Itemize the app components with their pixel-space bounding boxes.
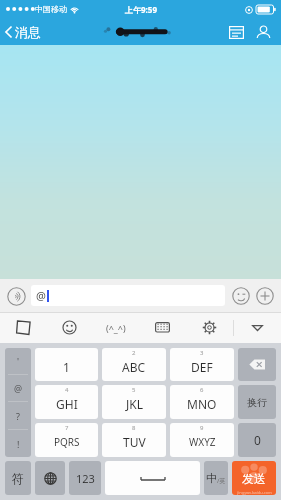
staticText: 3 (200, 349, 204, 357)
button[interactable]: Emoji (229, 284, 253, 308)
button[interactable]: 发送 (232, 461, 276, 495)
button[interactable]: Space (105, 461, 200, 495)
staticText: 123 (76, 471, 95, 486)
staticText: 消息 (15, 24, 41, 40)
staticText: ? (16, 410, 20, 422)
button[interactable]: Emoticons (46, 312, 92, 343)
staticText: 上午9:59 (125, 4, 157, 15)
staticText: 9 (200, 424, 204, 432)
staticText: 中 (206, 471, 217, 485)
staticText: PQRS (54, 435, 80, 449)
staticText: 4 (65, 386, 69, 394)
button[interactable]: ! (5, 430, 31, 457)
button[interactable]: Contacts (253, 22, 274, 42)
staticText: MNO (187, 396, 217, 412)
button[interactable]: Backspace (238, 348, 276, 381)
staticText: ! (17, 438, 20, 450)
staticText: @ (14, 382, 23, 394)
button[interactable]: 6 (170, 385, 234, 419)
staticText: WXYZ (189, 435, 216, 449)
staticText: (^_^) (106, 322, 126, 334)
staticText: 中国移动 (35, 4, 67, 14)
staticText: 0 (254, 432, 261, 448)
button[interactable]: Sogou input (0, 312, 46, 343)
staticText: GHI (56, 396, 78, 412)
staticText: 7 (65, 424, 69, 432)
staticText: 1 (63, 359, 70, 375)
button[interactable]: 2 (102, 348, 166, 381)
staticText: 换行 (247, 396, 267, 409)
staticText: jingyan.baidu.com (237, 490, 272, 495)
staticText: JKL (126, 396, 143, 412)
button[interactable]: 消息 (0, 21, 47, 43)
button[interactable]: 1 (35, 348, 98, 381)
staticText: 8 (132, 424, 136, 432)
button[interactable]: Settings (186, 312, 233, 343)
staticText: TUV (123, 434, 146, 450)
staticText: 5 (132, 386, 136, 394)
button[interactable]: Voice message (4, 284, 28, 308)
button[interactable]: 5 (102, 385, 166, 419)
staticText: 6 (200, 386, 204, 394)
staticText: DEF (191, 359, 213, 375)
button[interactable]: Add attachment (253, 284, 277, 308)
button[interactable]: 4 (35, 385, 98, 419)
button[interactable]: 8 (102, 423, 166, 457)
button[interactable]: (^_^) (92, 312, 139, 343)
button[interactable]: 符 (5, 461, 31, 495)
button[interactable]: Hide keyboard (234, 312, 281, 343)
button[interactable]: ' (5, 348, 31, 374)
button[interactable]: Keyboard layout (139, 312, 186, 343)
button[interactable]: Switch language (35, 461, 65, 495)
staticText: 发送 (242, 471, 266, 486)
staticText: ' (17, 355, 20, 367)
button[interactable]: Messages (226, 23, 247, 42)
button[interactable]: 7 (35, 423, 98, 457)
button[interactable]: 9 (170, 423, 234, 457)
button[interactable]: 换行 (238, 385, 276, 419)
button[interactable]: 中 (204, 461, 228, 495)
button[interactable]: 3 (170, 348, 234, 381)
button[interactable]: @ (31, 285, 225, 306)
staticText: @ (36, 288, 46, 303)
button[interactable]: 0 (238, 423, 276, 457)
staticText: ABC (122, 359, 146, 375)
staticText: /英 (217, 477, 226, 485)
button[interactable]: @ (5, 375, 31, 401)
staticText: 2 (132, 349, 136, 357)
button[interactable]: ? (5, 402, 31, 429)
button[interactable]: 123 (69, 461, 101, 495)
staticText: 符 (12, 471, 24, 486)
